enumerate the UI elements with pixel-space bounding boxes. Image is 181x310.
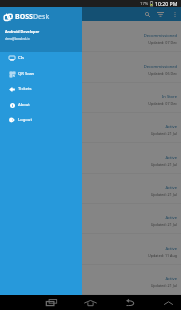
staticText: Updated: 07 Dec [148,40,177,45]
button[interactable]: Filter [154,7,167,21]
button[interactable]: Active [0,264,181,294]
button[interactable]: Active [0,143,181,173]
button[interactable]: Logout [0,112,82,128]
button[interactable]: Active [0,294,181,310]
staticText: demo@bossdesk.io [5,37,30,41]
staticText: Updated: 21 Jul [150,162,177,167]
button[interactable]: QR Scan [0,66,82,82]
staticText: CIs [18,55,25,61]
staticText: Updated: 06 Dec [148,71,177,76]
staticText: Android Developer [5,29,40,34]
button[interactable]: Active [0,173,181,203]
staticText: Active [165,276,177,282]
button[interactable]: Decommissioned [0,52,181,82]
button[interactable]: Home [81,295,99,310]
button[interactable]: Active [0,112,181,142]
button[interactable]: Search [141,7,154,21]
staticText: In Store [161,94,177,100]
button[interactable]: In Store [0,82,181,112]
button[interactable]: More options [168,7,181,21]
button[interactable]: About [0,97,82,113]
staticText: Active [165,185,177,191]
staticText: BOSS [15,12,33,22]
staticText: Updated: 07 Dec [148,101,177,106]
button[interactable]: Tickets [0,81,82,97]
staticText: QR Scan [18,71,35,77]
staticText: Updated: 21 Jul [150,222,177,227]
staticText: Decommissioned [143,64,177,70]
staticText: 17% [140,1,149,7]
staticText: Updated: 21 Jul [150,283,177,288]
staticText: Tickets [18,86,32,92]
staticText: Decommissioned [143,33,177,39]
button[interactable]: CIs [0,50,82,66]
button[interactable]: Back [121,295,139,310]
staticText: Desk [33,12,50,22]
staticText: About [18,102,30,108]
staticText: Updated: 11 Aug [147,253,177,258]
staticText: Active [165,124,177,130]
staticText: Updated: 21 Jul [150,131,177,136]
button[interactable]: Recents [42,295,60,310]
staticText: Active [165,155,177,161]
button[interactable]: Hide navigation [159,295,177,310]
staticText: Active [165,246,177,252]
button[interactable]: Active [0,234,181,264]
staticText: Updated: 21 Jul [150,192,177,197]
staticText: Active [165,215,177,221]
button[interactable]: Decommissioned [0,21,181,51]
button[interactable]: Active [0,203,181,233]
staticText: Logout [18,117,32,123]
staticText: 10:20 PM [155,0,178,7]
